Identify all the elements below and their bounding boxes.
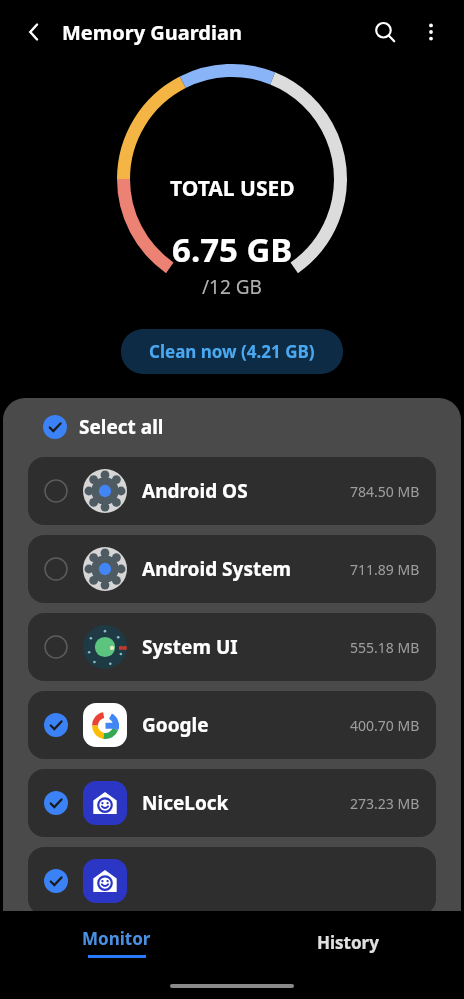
staticText: System UI [142, 634, 350, 660]
staticText: TOTAL USED [170, 174, 295, 203]
staticText: Memory Guardian [62, 19, 242, 46]
button[interactable]: Google [28, 691, 436, 759]
staticText: 711.89 MB [350, 560, 420, 579]
button[interactable]: Android System [28, 535, 436, 603]
button[interactable]: Android OS [28, 457, 436, 525]
staticText: Android OS [142, 478, 350, 504]
staticText: Monitor [82, 927, 151, 950]
staticText: 400.70 MB [350, 716, 420, 735]
button[interactable] [28, 847, 436, 915]
staticText: Android System [142, 556, 350, 582]
staticText: History [317, 931, 379, 954]
staticText: /12 GB [202, 274, 262, 300]
staticText: 784.50 MB [350, 482, 420, 501]
staticText: Google [142, 712, 350, 738]
button[interactable]: Back [14, 12, 54, 52]
staticText: Clean now (4.21 GB) [149, 340, 315, 363]
staticText: NiceLock [142, 790, 350, 816]
button[interactable]: History [232, 911, 464, 973]
staticText: 273.23 MB [350, 794, 420, 813]
button[interactable]: Monitor [0, 911, 232, 973]
button[interactable]: More options [410, 11, 452, 53]
button[interactable]: Clean now (4.21 GB) [121, 329, 343, 374]
button[interactable]: System UI [28, 613, 436, 681]
staticText: 6.75 GB [172, 227, 293, 272]
button[interactable]: NiceLock [28, 769, 436, 837]
staticText: Select all [79, 414, 164, 440]
button[interactable]: Search [364, 11, 406, 53]
staticText: 555.18 MB [350, 638, 420, 657]
button[interactable]: Select all [3, 398, 461, 452]
